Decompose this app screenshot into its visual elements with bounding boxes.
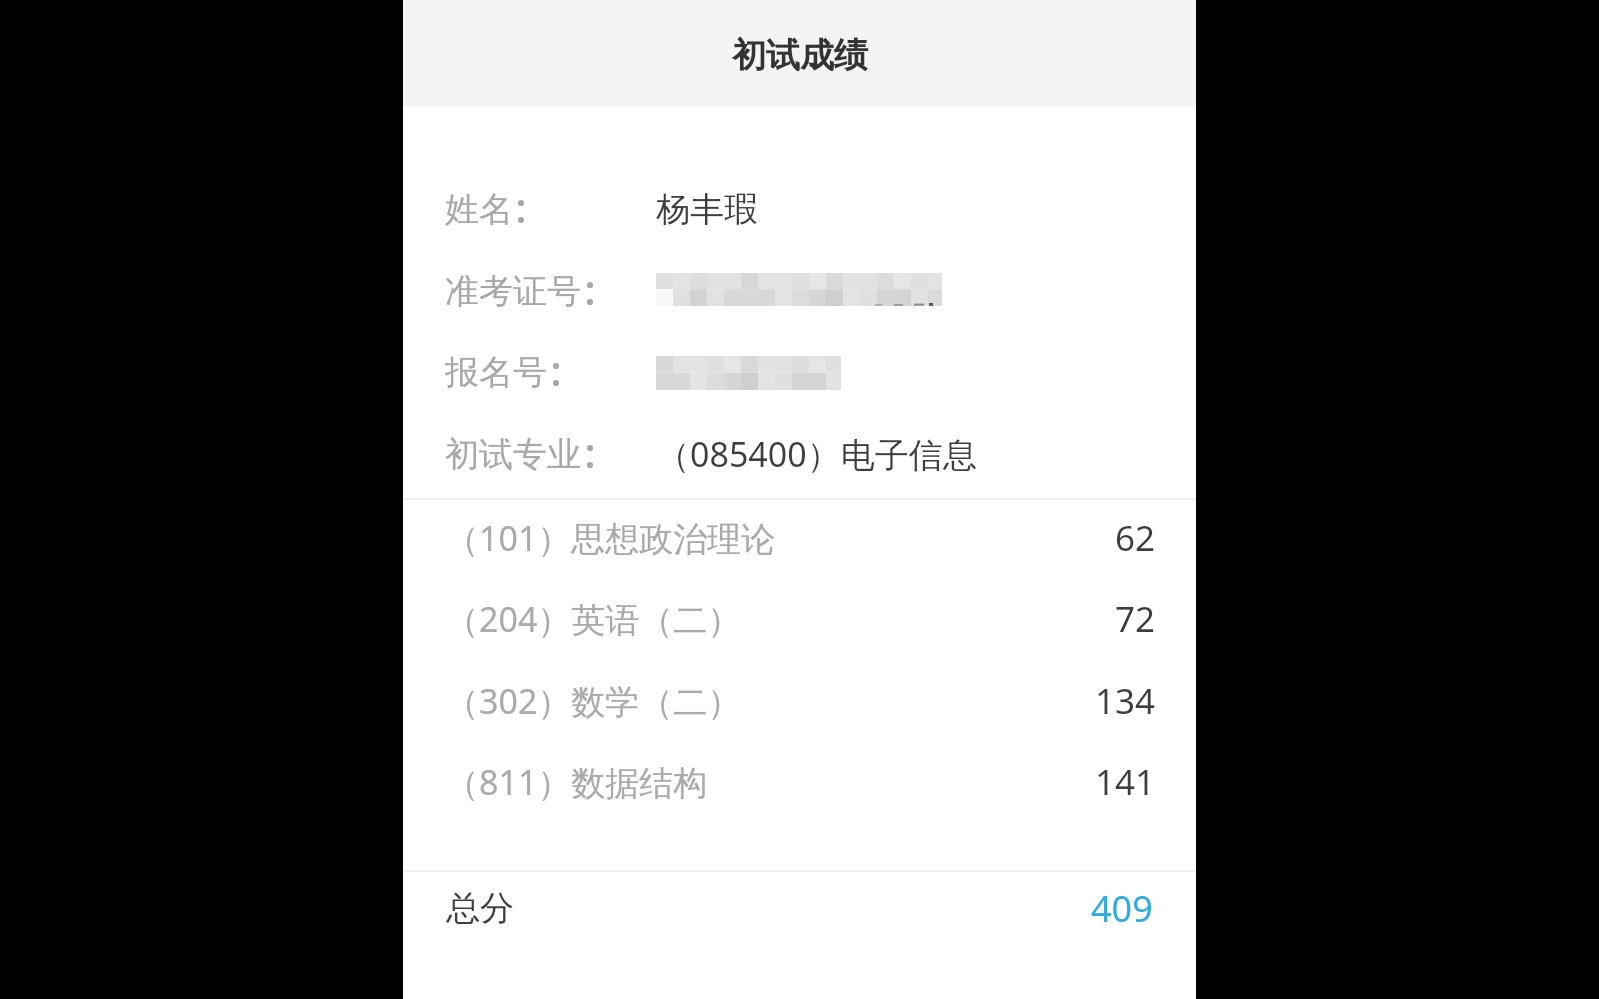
button[interactable]: （101）思想政治理论 <box>403 498 1196 578</box>
staticText: （101）思想政治理论 <box>445 515 776 561</box>
staticText: 总分 <box>446 887 514 930</box>
staticText: 62 <box>1115 514 1156 562</box>
staticText: 初试专业 <box>445 433 581 476</box>
button[interactable]: 初试成绩 <box>403 0 1196 106</box>
button[interactable]: （811）数据结构 <box>403 742 1196 822</box>
button[interactable]: 总分 <box>403 868 1196 948</box>
staticText: 报名号 <box>445 351 547 394</box>
staticText: （302）数学（二） <box>445 678 742 724</box>
staticText: （085400）电子信息 <box>656 431 977 477</box>
staticText: 初试成绩 <box>732 34 868 77</box>
staticText: 409 <box>1091 884 1153 933</box>
staticText: 134 <box>1095 677 1156 725</box>
button[interactable]: （204）英语（二） <box>403 579 1196 659</box>
staticText: （204）英语（二） <box>445 596 742 642</box>
button[interactable] <box>403 332 1196 412</box>
staticText: 141 <box>1095 758 1156 806</box>
button[interactable] <box>403 414 1196 494</box>
button[interactable] <box>403 169 1196 249</box>
button[interactable] <box>403 251 1196 331</box>
staticText: 杨丰瑕 <box>656 188 758 231</box>
button[interactable]: （302）数学（二） <box>403 661 1196 741</box>
staticText: 准考证号 <box>445 270 581 313</box>
staticText: 72 <box>1115 595 1156 643</box>
staticText: 姓名 <box>445 188 513 231</box>
staticText: （811）数据结构 <box>445 759 708 805</box>
